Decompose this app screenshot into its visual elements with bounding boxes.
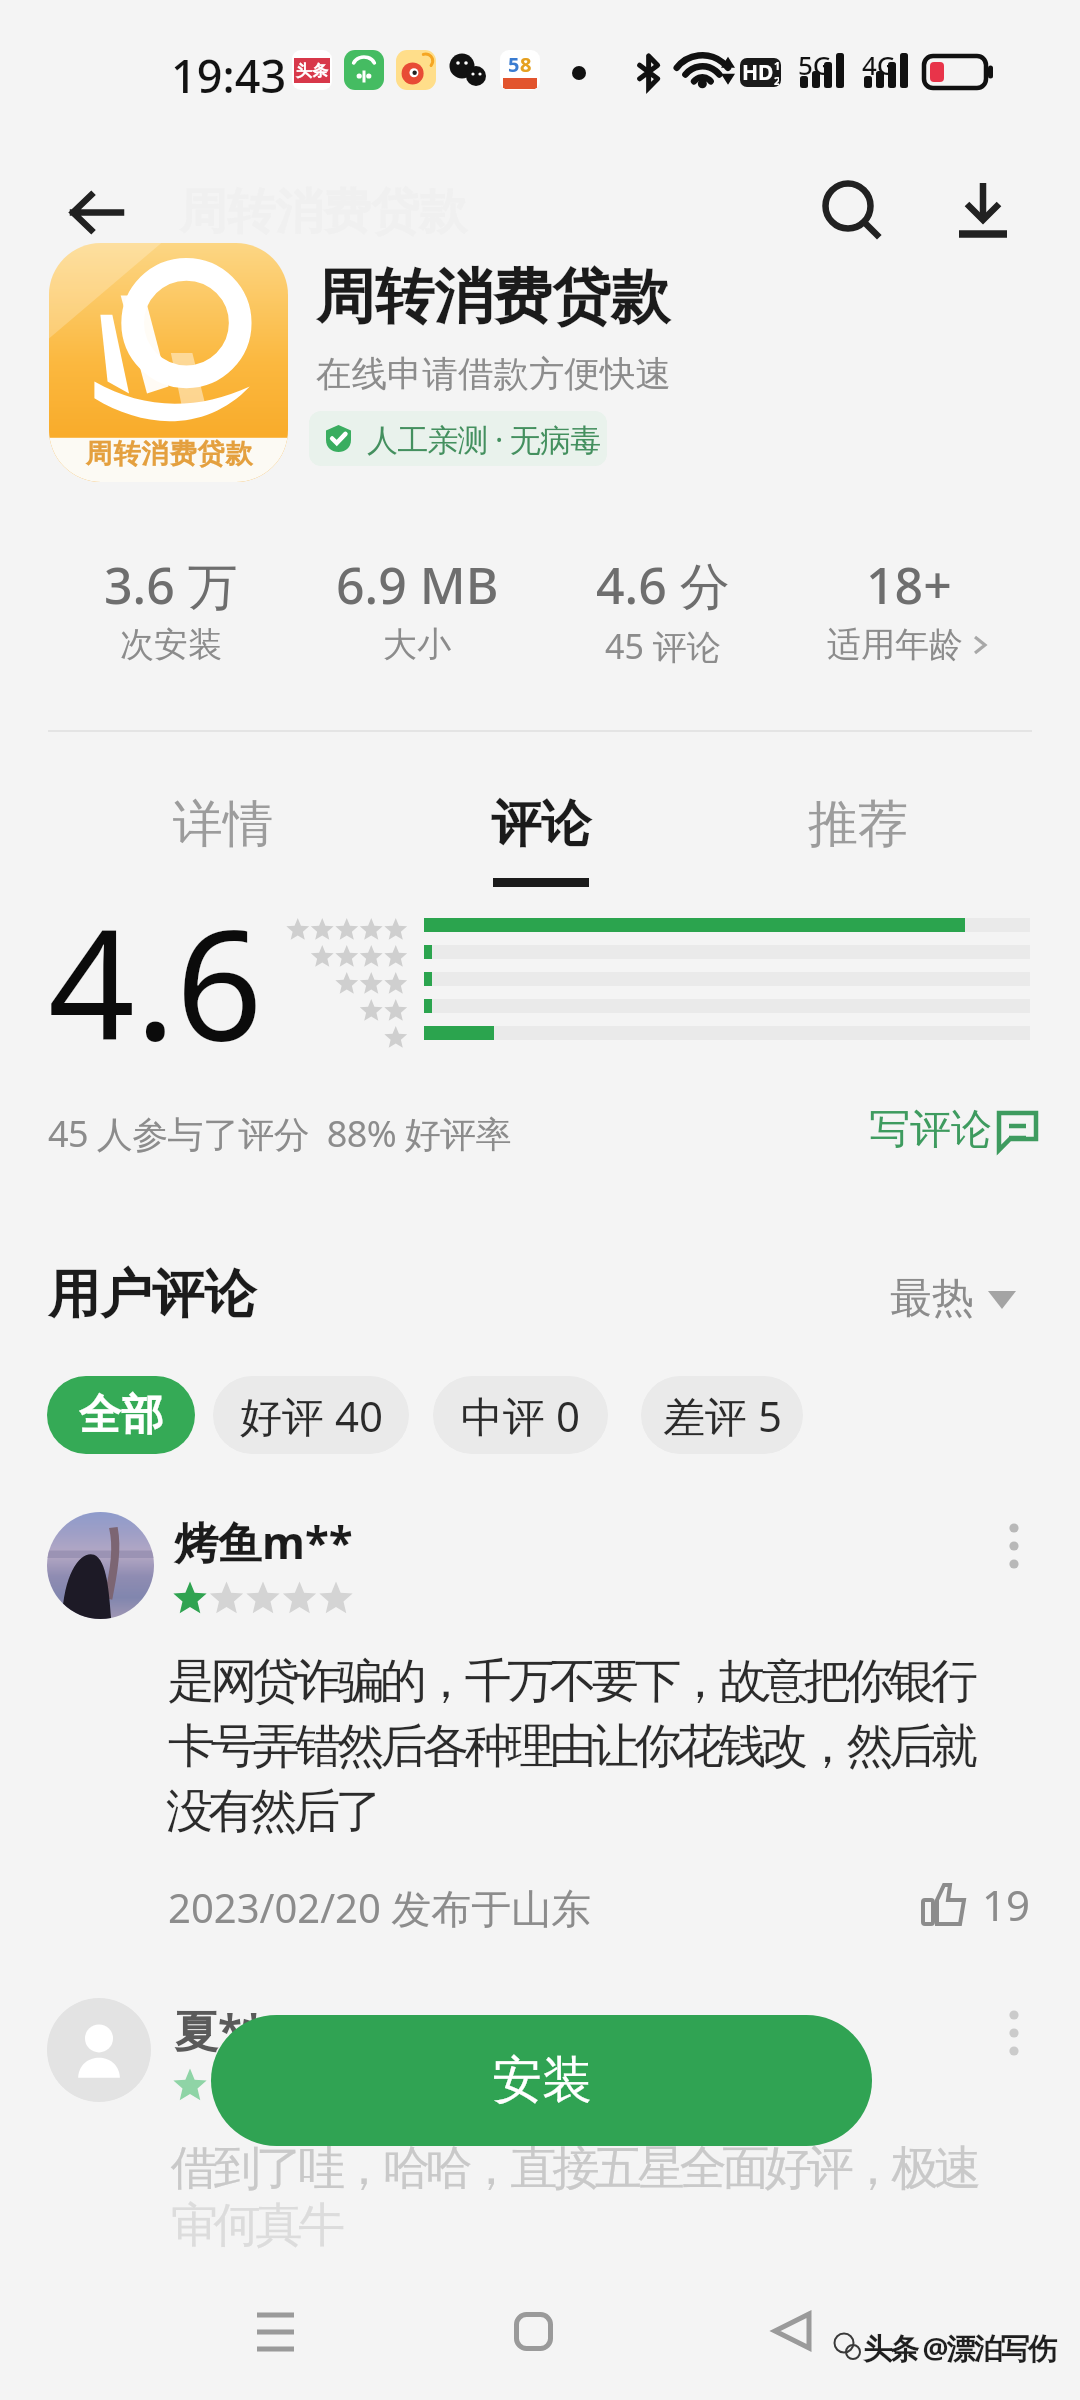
- staticText: 1: [774, 58, 779, 73]
- button[interactable]: 评论: [382, 793, 699, 887]
- staticText: 好评 40: [240, 1387, 383, 1444]
- staticText: 详情: [173, 793, 273, 856]
- staticText: 写评论: [869, 1104, 992, 1156]
- button[interactable]: 安装: [211, 2015, 872, 2146]
- staticText: 3.6 万: [104, 551, 238, 619]
- staticText: 审何真牛: [171, 2196, 341, 2255]
- staticText: 头条: [296, 61, 328, 81]
- button[interactable]: 最热: [890, 1272, 1016, 1325]
- button[interactable]: 推荐: [699, 793, 1016, 887]
- staticText: 差评 5: [663, 1387, 782, 1444]
- staticText: 是网贷诈骗的，千万不要下，故意把你银行: [168, 1652, 974, 1711]
- staticText: 烤鱼m**: [174, 1512, 353, 1572]
- button[interactable]: 19: [920, 1876, 1031, 1933]
- button[interactable]: Back: [48, 164, 144, 260]
- staticText: 用户评论: [48, 1262, 256, 1328]
- staticText: 评论: [491, 793, 591, 856]
- button[interactable]: 4.6 分: [540, 551, 786, 669]
- staticText: 大小: [383, 623, 451, 666]
- staticText: 周转消费贷款: [85, 437, 253, 471]
- staticText: 5G: [798, 47, 832, 82]
- staticText: 推荐: [808, 793, 908, 856]
- staticText: 借到了哇，哈哈，直接五星全面好评，极速: [171, 2139, 977, 2198]
- staticText: 最热: [890, 1272, 974, 1325]
- staticText: 2023/02/20 发布于山东: [168, 1880, 592, 1935]
- staticText: 安装: [492, 2049, 592, 2112]
- staticText: 6.9 MB: [336, 551, 499, 619]
- button[interactable]: 人工亲测 · 无病毒: [309, 411, 607, 466]
- staticText: 没有然后了: [168, 1782, 380, 1841]
- staticText: 45 评论: [605, 623, 721, 669]
- staticText: 全部: [79, 1389, 163, 1442]
- button[interactable]: Recents: [227, 2283, 323, 2379]
- button[interactable]: 详情: [64, 793, 382, 887]
- staticText: 卡号弄错然后各种理由让你花钱改，然后就: [168, 1717, 974, 1776]
- staticText: HD: [742, 58, 774, 87]
- button[interactable]: 好评 40: [213, 1376, 409, 1454]
- staticText: 周转消费贷款: [316, 260, 670, 334]
- staticText: 4G: [862, 47, 896, 82]
- button[interactable]: 18+: [786, 551, 1032, 666]
- staticText: 在线申请借款方便快速: [316, 352, 671, 397]
- button[interactable]: Back: [744, 2283, 840, 2379]
- staticText: 45 人参与了评分 88% 好评率: [48, 1109, 511, 1158]
- staticText: 中评 0: [461, 1387, 580, 1444]
- staticText: 头条 @漂泊写伤: [863, 2328, 1055, 2368]
- button[interactable]: 全部: [47, 1376, 195, 1454]
- staticText: 2: [774, 73, 779, 87]
- staticText: 人工亲测 · 无病毒: [367, 418, 601, 460]
- button[interactable]: 3.6 万: [48, 551, 294, 666]
- button[interactable]: 差评 5: [641, 1376, 803, 1454]
- staticText: 4.6: [48, 878, 263, 1085]
- staticText: 夏**: [174, 2000, 266, 2060]
- button[interactable]: 写评论: [869, 1104, 1039, 1156]
- button[interactable]: More options: [986, 1515, 1042, 1577]
- staticText: 适用年龄: [827, 623, 963, 666]
- button[interactable]: Home: [485, 2283, 581, 2379]
- staticText: 8: [520, 51, 532, 78]
- button[interactable]: 6.9 MB: [294, 551, 540, 666]
- button[interactable]: Search: [807, 166, 903, 262]
- staticText: 次安装: [120, 623, 222, 666]
- staticText: 18+: [866, 551, 952, 619]
- staticText: 19: [982, 1876, 1031, 1933]
- button[interactable]: 中评 0: [433, 1376, 608, 1454]
- staticText: 4.6 分: [596, 551, 730, 619]
- button[interactable]: Download: [935, 162, 1031, 258]
- staticText: 5: [508, 51, 520, 78]
- staticText: 19:43: [171, 45, 287, 106]
